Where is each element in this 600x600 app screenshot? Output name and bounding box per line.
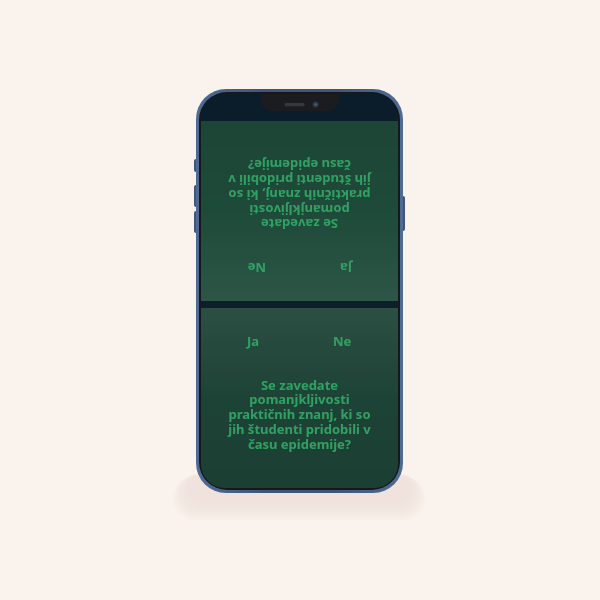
button[interactable]: Ja bbox=[241, 330, 266, 352]
button[interactable]: Ja bbox=[333, 257, 358, 279]
staticText: Ne bbox=[333, 332, 352, 350]
staticText: Ja bbox=[339, 259, 352, 277]
button[interactable]: Ne bbox=[327, 330, 358, 352]
staticText: Ne bbox=[247, 259, 266, 277]
button[interactable]: Ne bbox=[241, 257, 272, 279]
staticText: Se zavedate pomanjkljivosti praktičnih z… bbox=[228, 376, 371, 453]
staticText: Se zavedate pomanjkljivosti praktičnih z… bbox=[228, 156, 371, 233]
staticText: Ja bbox=[247, 332, 260, 350]
